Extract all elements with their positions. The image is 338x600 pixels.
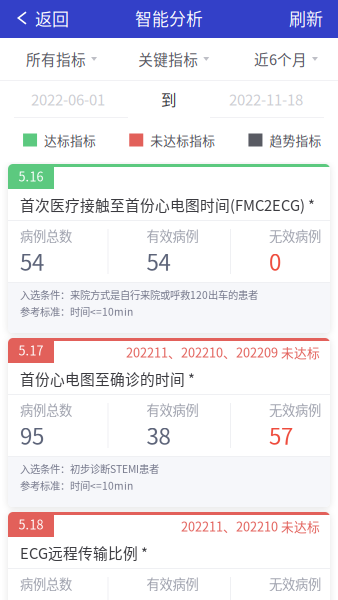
staticText: 54 — [146, 245, 170, 277]
staticText: 首份心电图至确诊的时间 * — [20, 368, 195, 389]
button[interactable]: 刷新 — [279, 0, 338, 38]
staticText: 病例总数 — [20, 574, 72, 593]
staticText: 返回 — [35, 6, 69, 30]
button[interactable]: 近6个月 — [230, 38, 338, 80]
staticText: 近6个月 — [254, 48, 307, 69]
button[interactable]: 返回 — [0, 0, 79, 38]
button[interactable]: 2022-11-18 — [210, 81, 324, 117]
staticText: 54 — [20, 245, 44, 277]
staticText: 趋势指标 — [269, 131, 321, 149]
staticText: 首次医疗接触至首份心电图时间(FMC2ECG) * — [20, 194, 315, 215]
staticText: 病例总数 — [20, 226, 72, 245]
staticText: 参考标准：时间<=10min — [20, 478, 133, 493]
staticText: 5.17 — [18, 341, 43, 359]
staticText: 202211、202210 未达标 — [181, 517, 320, 535]
staticText: 5.16 — [18, 167, 43, 185]
staticText: 入选条件：初步诊断STEMI患者 — [20, 461, 159, 476]
staticText: 无效病例 — [269, 400, 321, 419]
staticText: ECG远程传输比例 * — [20, 542, 148, 563]
staticText: 到 — [161, 88, 177, 111]
staticText: 有效病例 — [146, 400, 198, 419]
staticText: 2022-06-01 — [31, 88, 105, 110]
button[interactable]: 关键指标 — [118, 38, 230, 80]
staticText: 有效病例 — [146, 574, 198, 593]
staticText: 无效病例 — [269, 574, 321, 593]
staticText: 无效病例 — [269, 226, 321, 245]
staticText: 达标指标 — [44, 131, 96, 149]
staticText: 刷新 — [289, 6, 323, 30]
staticText: 202211、202210、202209 未达标 — [126, 343, 320, 361]
staticText: 57 — [269, 419, 293, 451]
staticText: 38 — [146, 419, 170, 451]
staticText: 参考标准：时间<=10min — [20, 304, 133, 319]
staticText: 0 — [269, 245, 281, 277]
button[interactable]: 所有指标 — [5, 38, 118, 80]
staticText: 未达标指标 — [150, 131, 215, 149]
staticText: 5.18 — [18, 515, 43, 533]
staticText: 智能分析 — [135, 6, 203, 30]
staticText: 2022-11-18 — [229, 88, 303, 110]
staticText: 有效病例 — [146, 226, 198, 245]
button[interactable]: 2022-06-01 — [14, 81, 128, 117]
staticText: 关键指标 — [138, 48, 198, 69]
staticText: 95 — [20, 419, 44, 451]
staticText: 入选条件：来院方式是自行来院或呼救120出车的患者 — [20, 287, 258, 302]
staticText: 病例总数 — [20, 400, 72, 419]
staticText: 所有指标 — [26, 48, 86, 69]
